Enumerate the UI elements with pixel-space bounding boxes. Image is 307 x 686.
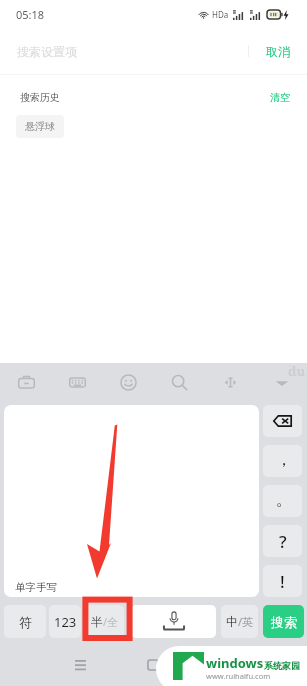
staticText: 。: [276, 490, 292, 510]
staticText: 123: [54, 613, 77, 631]
staticText: 中: [226, 614, 238, 629]
button[interactable]: ?: [263, 525, 302, 557]
staticText: /全: [103, 614, 119, 629]
button[interactable]: Recent apps: [60, 645, 100, 685]
button[interactable]: 悬浮球: [16, 115, 64, 138]
button[interactable]: Space: [131, 605, 216, 638]
button[interactable]: 搜索: [263, 605, 304, 638]
button[interactable]: 。: [263, 485, 302, 517]
staticText: www.ruihaifu.com: [206, 671, 271, 681]
staticText: !: [280, 570, 285, 593]
button[interactable]: Keyboard: [52, 363, 103, 402]
button[interactable]: 清空: [270, 91, 290, 104]
staticText: du: [288, 362, 306, 380]
staticText: windows: [206, 654, 264, 672]
staticText: 05:18: [16, 7, 45, 22]
staticText: ?: [279, 530, 287, 553]
button[interactable]: 123: [49, 605, 81, 638]
staticText: 系统家园: [264, 660, 300, 671]
button[interactable]: 中: [221, 605, 258, 638]
button[interactable]: 半: [86, 605, 124, 638]
button[interactable]: Home: [133, 645, 173, 685]
staticText: /英: [238, 614, 254, 629]
staticText: 清空: [270, 91, 290, 104]
staticText: HDa: [212, 9, 229, 20]
other: Backspace: [273, 415, 292, 427]
button[interactable]: !: [263, 565, 302, 597]
button[interactable]: Search: [154, 363, 205, 402]
button[interactable]: 取消: [252, 36, 307, 67]
button[interactable]: Clipboard: [0, 363, 52, 402]
button[interactable]: Backspace: [263, 405, 302, 437]
staticText: 搜索设置项: [17, 44, 77, 59]
staticText: 搜索: [271, 614, 297, 630]
button[interactable]: 符: [4, 605, 46, 638]
staticText: 符: [19, 614, 32, 630]
button[interactable]: Hide keyboard: [256, 363, 307, 402]
button[interactable]: Back: [206, 645, 246, 685]
button[interactable]: ，: [263, 445, 302, 477]
button[interactable]: Emoji: [103, 363, 154, 402]
staticText: 搜索历史: [20, 91, 60, 104]
button[interactable]: 单字手写: [4, 405, 259, 597]
staticText: ，: [276, 450, 292, 470]
staticText: 悬浮球: [25, 120, 55, 133]
staticText: 半: [91, 614, 103, 629]
staticText: 取消: [266, 44, 290, 59]
staticText: 单字手写: [15, 581, 57, 594]
button[interactable]: Move cursor: [205, 363, 256, 402]
